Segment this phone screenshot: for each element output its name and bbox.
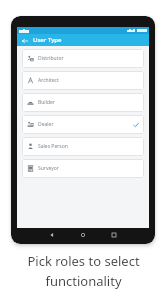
- button[interactable]: Dealer: [22, 115, 144, 134]
- staticText: Builder: [38, 99, 55, 106]
- staticText: functionality: [45, 272, 122, 290]
- button[interactable]: Builder: [22, 93, 144, 112]
- button[interactable]: Recent apps: [109, 230, 119, 240]
- button[interactable]: Distributor: [22, 49, 144, 68]
- staticText: User Type: [33, 36, 62, 44]
- staticText: Sales Person: [38, 143, 68, 150]
- button[interactable]: Home: [78, 230, 88, 240]
- button[interactable]: Back: [47, 230, 57, 240]
- staticText: Pick roles to select: [27, 252, 140, 270]
- button[interactable]: Architect: [22, 71, 144, 90]
- staticText: Surveyor: [38, 165, 59, 172]
- staticText: Dealer: [38, 121, 54, 128]
- button[interactable]: Back: [20, 36, 29, 45]
- staticText: Architect: [38, 77, 59, 84]
- button[interactable]: Sales Person: [22, 137, 144, 156]
- button[interactable]: Surveyor: [22, 159, 144, 178]
- staticText: Distributor: [38, 55, 64, 62]
